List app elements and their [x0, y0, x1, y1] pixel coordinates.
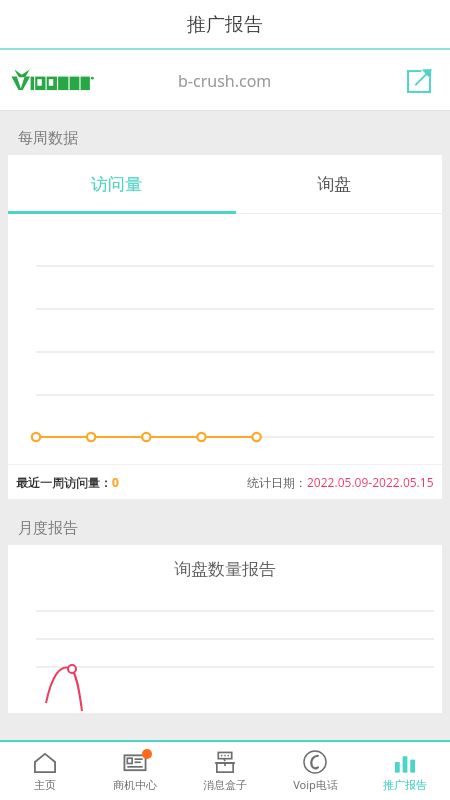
staticText: 询盘	[317, 174, 351, 195]
button[interactable]: 推广报告	[360, 742, 450, 800]
button[interactable]: 消息盒子	[180, 742, 270, 800]
staticText: b-crush.com	[178, 70, 272, 92]
staticText: 月度报告	[18, 519, 78, 538]
staticText: 统计日期：	[247, 475, 307, 490]
button[interactable]: 商机中心	[90, 742, 180, 800]
staticText: 商机中心	[113, 778, 157, 792]
button[interactable]: Voip电话	[270, 742, 360, 800]
staticText: 0	[112, 474, 119, 490]
button[interactable]: 访问量	[8, 155, 225, 214]
staticText: Voip电话	[293, 777, 338, 792]
staticText: 主页	[34, 778, 56, 792]
staticText: 推广报告	[383, 778, 427, 792]
staticText: 消息盒子	[203, 778, 247, 792]
staticText: 推广报告	[187, 13, 263, 37]
button[interactable]: 询盘	[225, 155, 442, 214]
staticText: 访问量	[91, 174, 142, 195]
staticText: 最近一周访问量：	[16, 475, 112, 490]
staticText: 询盘数量报告	[174, 559, 276, 580]
button[interactable]: 主页	[0, 742, 90, 800]
staticText: 2022.05.09-2022.05.15	[307, 474, 434, 490]
button[interactable]: Open site	[402, 64, 436, 98]
staticText: 每周数据	[18, 129, 78, 148]
